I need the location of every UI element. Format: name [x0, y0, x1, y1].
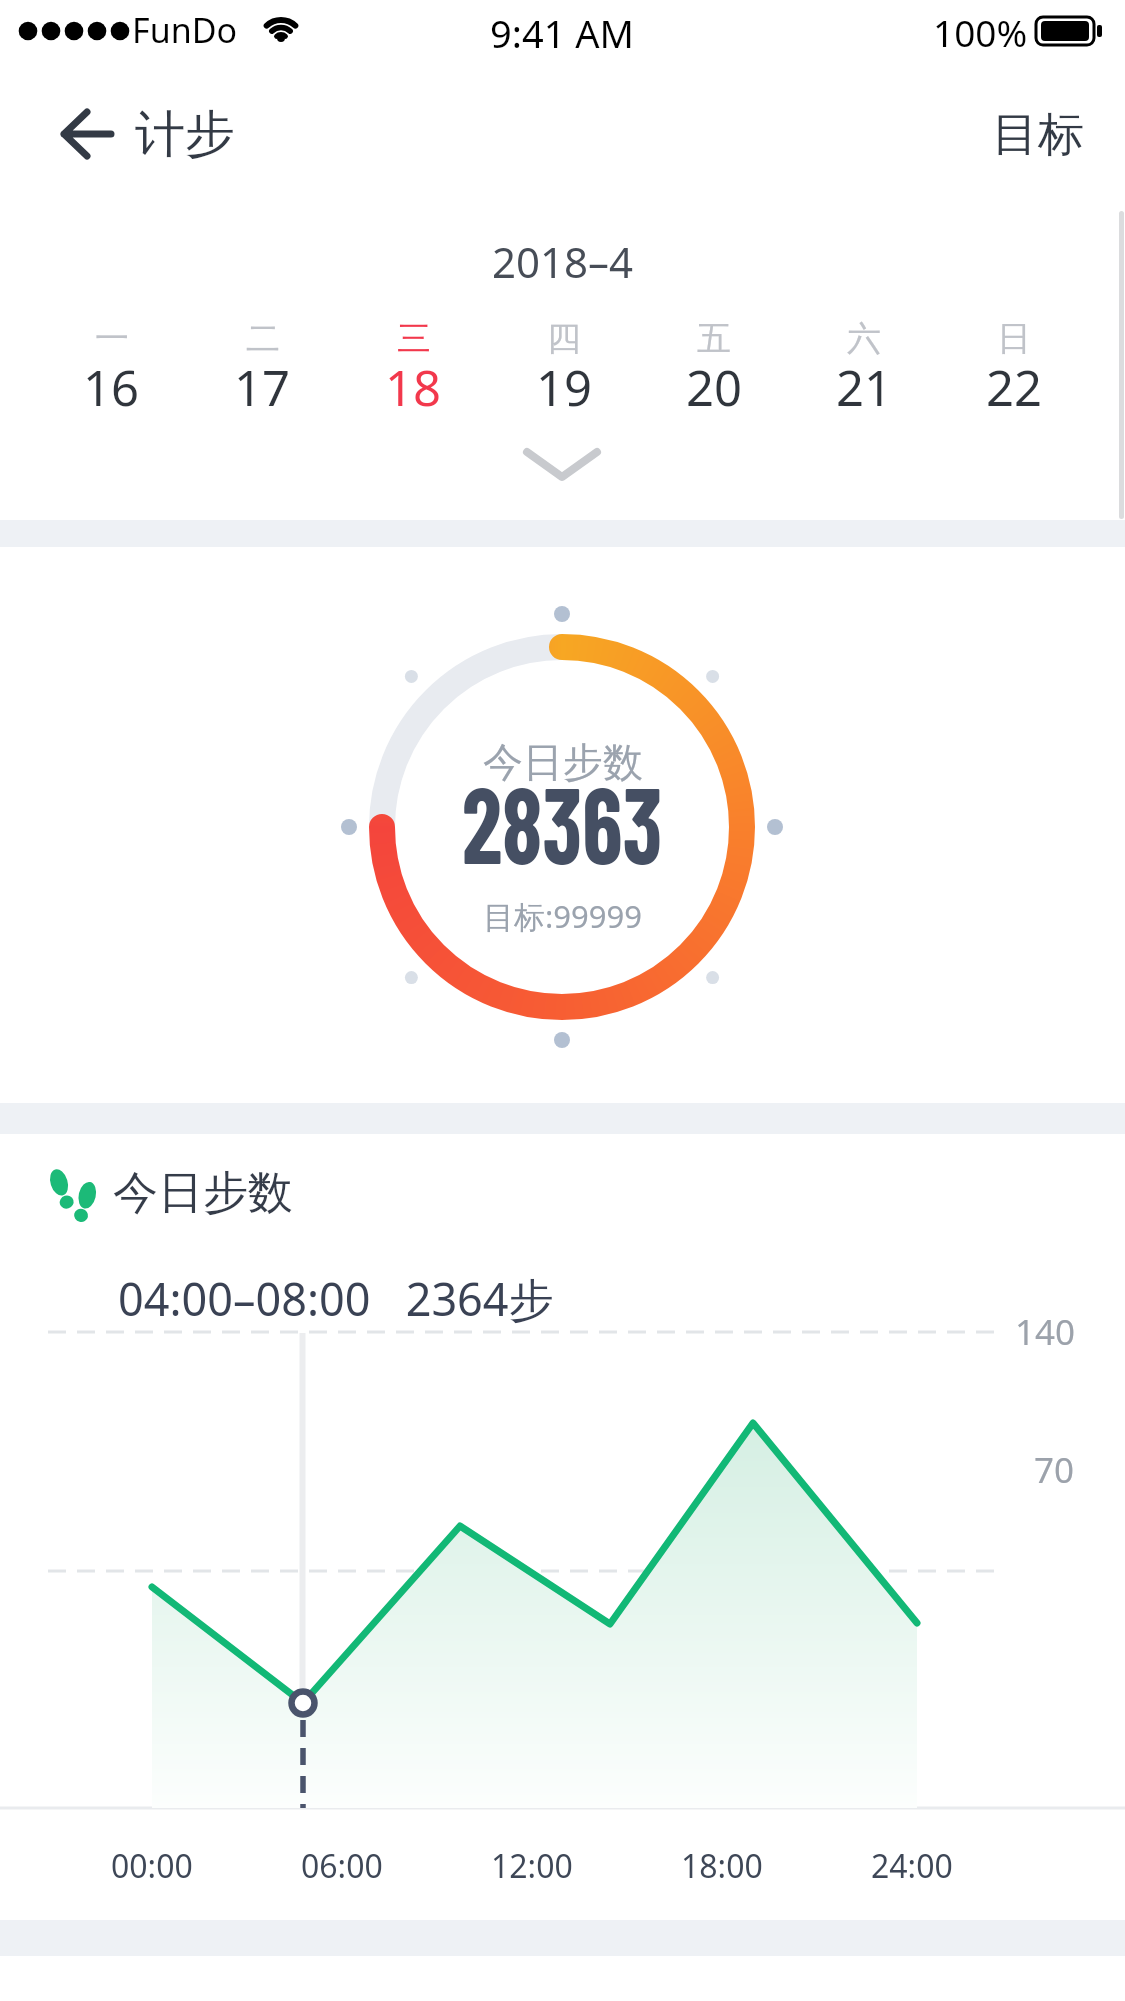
staticText: 18:00 — [681, 1844, 763, 1888]
staticText: 一 — [95, 317, 129, 360]
staticText: 16 — [83, 354, 140, 421]
staticText: 19 — [536, 354, 593, 421]
staticText: 70 — [1034, 1446, 1075, 1494]
staticText: 五 — [697, 317, 731, 360]
staticText: 17 — [234, 354, 291, 421]
staticText: 计步 — [135, 103, 235, 166]
staticText: 12:00 — [491, 1844, 573, 1888]
staticText: 四 — [547, 317, 581, 360]
staticText: 20 — [686, 354, 743, 421]
staticText: 六 — [847, 317, 881, 360]
staticText: 21 — [836, 354, 893, 421]
staticText: 28363 — [462, 757, 663, 885]
button[interactable]: 22 — [939, 351, 1089, 423]
staticText: 三 — [397, 317, 431, 360]
button[interactable]: 20 — [639, 351, 789, 423]
staticText: 今日步数 — [483, 737, 643, 787]
staticText: 24:00 — [871, 1844, 953, 1888]
button[interactable]: 19 — [489, 351, 639, 423]
staticText: 18 — [385, 354, 442, 421]
staticText: 目标:99999 — [483, 895, 642, 937]
button[interactable]: 21 — [789, 351, 939, 423]
staticText: 140 — [1015, 1308, 1076, 1356]
button[interactable]: 16 — [36, 351, 187, 423]
button[interactable]: 18 — [338, 351, 489, 423]
button[interactable]: 计步 — [45, 95, 245, 175]
button[interactable]: 目标 — [975, 100, 1100, 170]
staticText: 00:00 — [111, 1844, 193, 1888]
staticText: 二 — [246, 317, 280, 360]
staticText: 目标 — [992, 106, 1084, 164]
staticText: 22 — [986, 354, 1043, 421]
staticText: 06:00 — [301, 1844, 383, 1888]
staticText: 04:00–08:00 2364步 — [118, 1268, 554, 1329]
button[interactable]: 17 — [187, 351, 338, 423]
staticText: 今日步数 — [113, 1165, 293, 1222]
staticText: 日 — [997, 317, 1031, 360]
staticText: 2018–4 — [492, 233, 634, 290]
staticText: FunDo — [132, 7, 238, 53]
staticText: 9:41 AM — [490, 7, 635, 59]
staticText: 100% — [933, 7, 1028, 57]
button[interactable] — [507, 437, 617, 492]
